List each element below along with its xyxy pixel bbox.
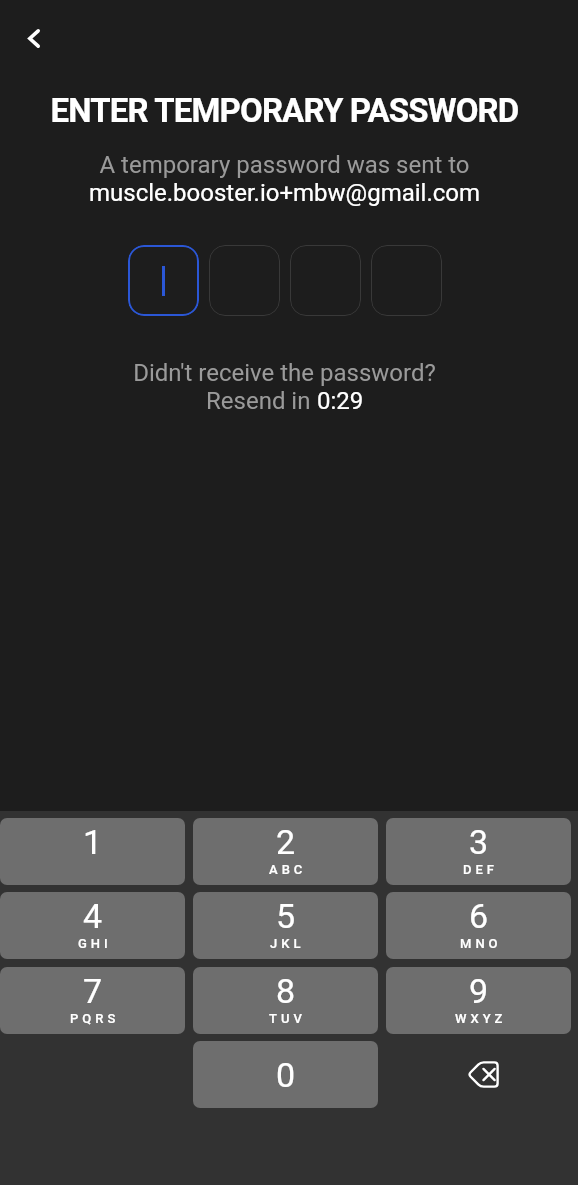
- staticText: WXYZ: [455, 1011, 507, 1026]
- button[interactable]: 6: [386, 892, 571, 959]
- staticText: 1: [83, 822, 103, 862]
- button[interactable]: [209, 245, 280, 316]
- button[interactable]: [371, 245, 442, 316]
- staticText: ABC: [269, 862, 307, 877]
- button[interactable]: 5: [193, 892, 378, 959]
- staticText: 6: [469, 896, 489, 936]
- button[interactable]: 0: [193, 1041, 378, 1108]
- staticText: 0:29: [317, 387, 364, 415]
- button[interactable]: [290, 245, 361, 316]
- staticText: 2: [276, 822, 296, 862]
- button[interactable]: Back: [12, 17, 56, 61]
- staticText: 0: [276, 1055, 296, 1095]
- staticText: 8: [276, 971, 296, 1011]
- staticText: MNO: [460, 936, 502, 951]
- button[interactable]: 1: [0, 818, 185, 885]
- staticText: PQRS: [70, 1011, 120, 1026]
- staticText: 7: [83, 971, 103, 1011]
- staticText: 9: [469, 971, 489, 1011]
- staticText: JKL: [270, 936, 305, 951]
- button[interactable]: 7: [0, 967, 185, 1034]
- staticText: GHI: [78, 936, 112, 951]
- staticText: A temporary password was sent to: [0, 151, 569, 179]
- staticText: Resend in: [206, 387, 317, 415]
- button[interactable]: [128, 245, 199, 316]
- staticText: 3: [469, 822, 489, 862]
- button[interactable]: 9: [386, 967, 571, 1034]
- button[interactable]: Resend in: [0, 387, 569, 415]
- button[interactable]: 2: [193, 818, 378, 885]
- staticText: ENTER TEMPORARY PASSWORD: [0, 91, 569, 130]
- staticText: muscle.booster.io+mbw@gmail.com: [0, 179, 569, 207]
- staticText: 4: [83, 896, 103, 936]
- button[interactable]: 3: [386, 818, 571, 885]
- button[interactable]: 8: [193, 967, 378, 1034]
- staticText: DEF: [463, 862, 498, 877]
- button[interactable]: Backspace: [386, 1041, 571, 1108]
- staticText: Didn't receive the password?: [0, 359, 569, 387]
- button[interactable]: 4: [0, 892, 185, 959]
- staticText: TUV: [269, 1011, 306, 1026]
- staticText: 5: [276, 896, 296, 936]
